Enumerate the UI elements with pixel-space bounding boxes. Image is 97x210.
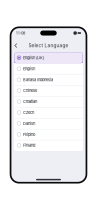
button[interactable]: English	[14, 63, 83, 74]
button[interactable]: Croatian	[14, 96, 83, 107]
staticText: English (UK)	[23, 55, 44, 60]
staticText: 11:08	[16, 31, 25, 35]
staticText: English	[23, 66, 35, 71]
staticText: Filipino	[23, 132, 35, 137]
staticText: Czech	[23, 110, 34, 115]
button[interactable]: Back	[13, 41, 19, 49]
button[interactable]: Bahasa Indonesia	[14, 74, 83, 85]
button[interactable]: English (UK)	[14, 52, 83, 63]
staticText: Chinese	[23, 88, 37, 93]
button[interactable]: Chinese	[14, 85, 83, 96]
staticText: Croatian	[23, 99, 37, 104]
button[interactable]: Finland	[14, 140, 83, 151]
button[interactable]: Danish	[14, 118, 83, 129]
button[interactable]: Filipino	[14, 129, 83, 140]
staticText: Bahasa Indonesia	[23, 77, 53, 82]
button[interactable]: Czech	[14, 107, 83, 118]
staticText: Finland	[23, 143, 35, 148]
staticText: Danish	[23, 121, 35, 126]
staticText: Select Language	[28, 43, 68, 48]
